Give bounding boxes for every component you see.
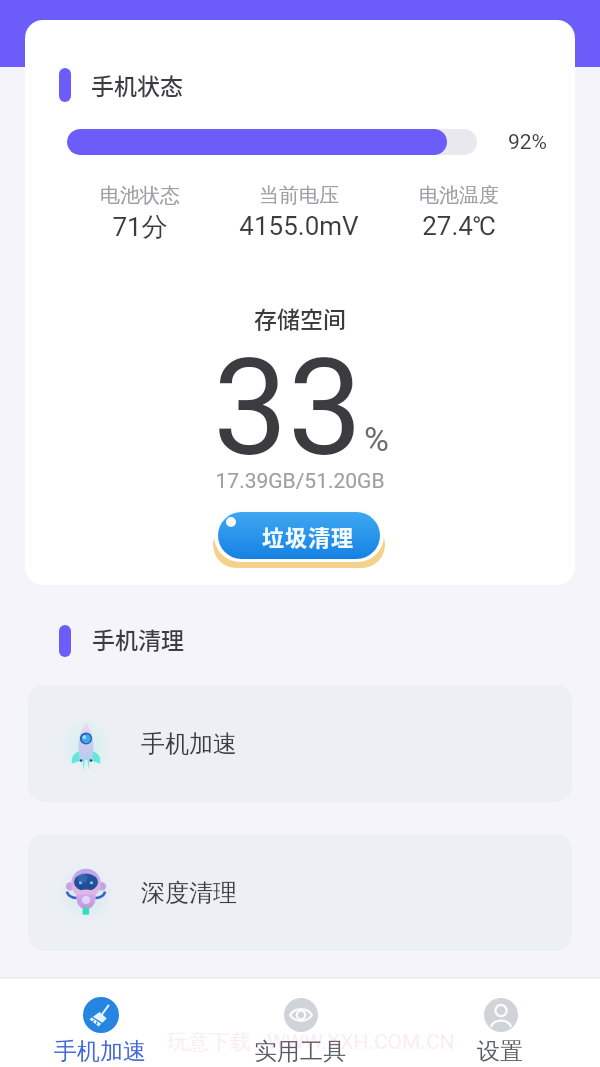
staticText: 4155.0mV [209,211,389,241]
button[interactable]: 实用工具 [200,979,400,1067]
staticText: 27.4℃ [369,211,549,241]
staticText: 手机清理 [92,622,184,655]
staticText: 当前电压 [209,183,389,208]
staticText: 33 [213,331,363,487]
button[interactable]: 深度清理 [28,834,572,951]
staticText: 实用工具 [254,1037,346,1066]
staticText: 电池温度 [369,183,549,208]
button[interactable]: 手机加速 [28,685,572,802]
staticText: 手机状态 [91,68,183,101]
button[interactable]: 手机加速 [0,979,200,1067]
staticText: 垃圾清理 [262,520,355,552]
staticText: % [364,419,389,459]
staticText: 存储空间 [25,301,575,334]
staticText: 玩意下载 · WWW.XXH.COM.CN [167,1029,455,1055]
staticText: 71分 [50,211,230,244]
staticText: 深度清理 [141,878,237,908]
staticText: 手机加速 [54,1037,146,1066]
staticText: 设置 [477,1037,523,1066]
staticText: 电池状态 [50,183,230,208]
staticText: 17.39GB/51.20GB [25,469,575,494]
staticText: 手机加速 [141,729,237,759]
staticText: 92% [508,130,547,155]
button[interactable]: 垃圾清理 [211,509,391,585]
button[interactable]: 设置 [400,979,600,1067]
